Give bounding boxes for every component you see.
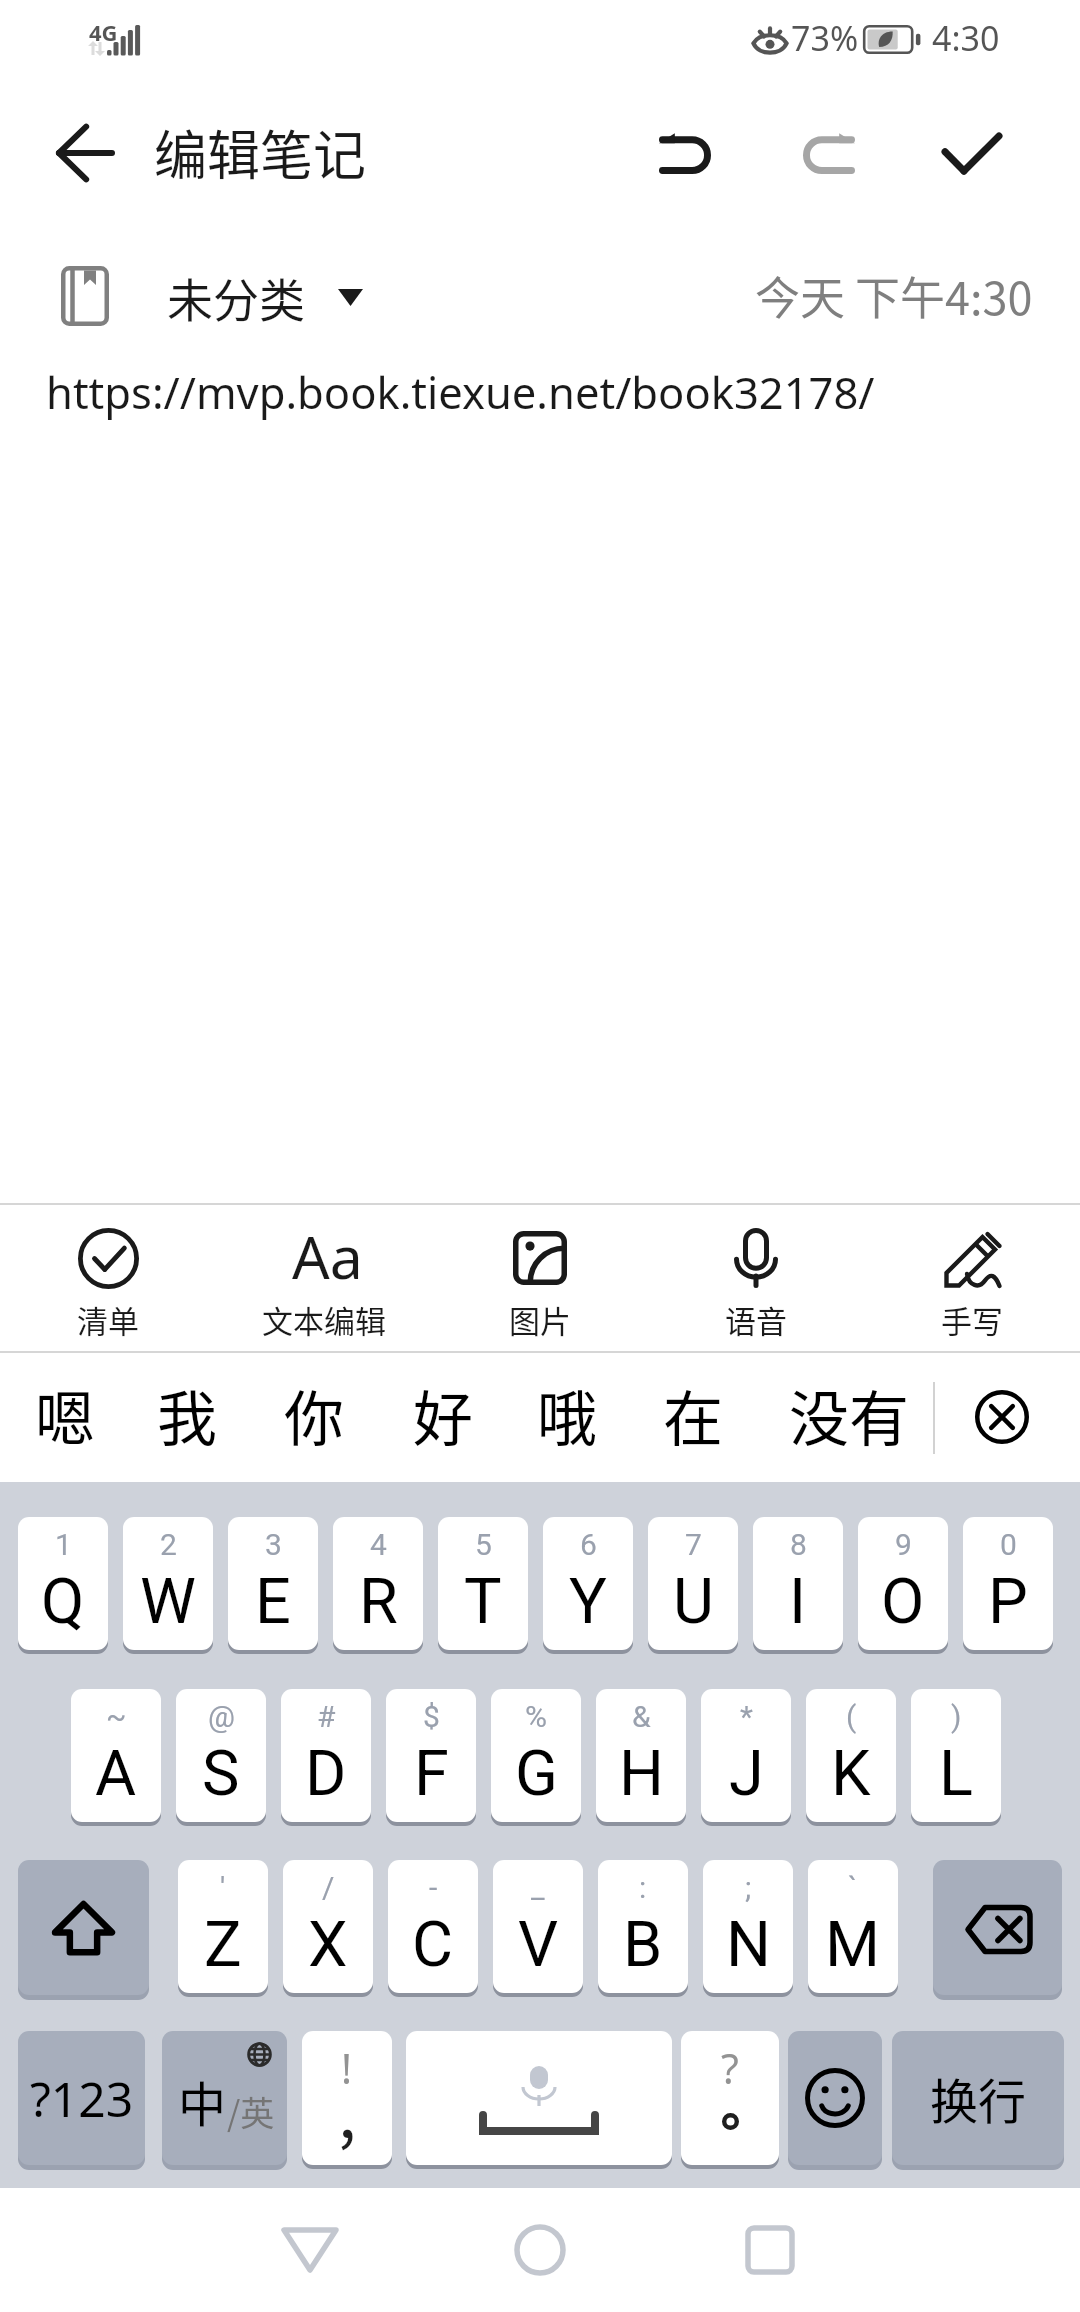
button[interactable]: ( — [806, 1689, 896, 1822]
button[interactable]: Back — [250, 2190, 370, 2310]
button[interactable]: 图片 — [432, 1205, 648, 1351]
staticText: , — [338, 2061, 357, 2157]
staticText: ; — [745, 1870, 752, 1905]
button[interactable] — [933, 1860, 1062, 1995]
button[interactable]: $ — [386, 1689, 476, 1822]
button[interactable]: ? — [681, 2031, 779, 2165]
staticText: 3 — [265, 1527, 282, 1562]
staticText: K — [831, 1737, 871, 1811]
button[interactable]: : — [598, 1860, 688, 1993]
staticText: R — [359, 1565, 398, 1639]
button[interactable]: 嗯 — [30, 1350, 100, 1479]
button[interactable]: 5 — [438, 1517, 528, 1650]
staticText: ~ — [106, 1699, 127, 1734]
button[interactable]: 3 — [228, 1517, 318, 1650]
button[interactable]: 6 — [543, 1517, 633, 1650]
staticText: ) — [951, 1699, 962, 1734]
button[interactable]: 你 — [279, 1350, 349, 1479]
button[interactable]: _ — [493, 1860, 583, 1993]
button[interactable]: 7 — [648, 1517, 738, 1650]
button[interactable]: 1 — [18, 1517, 108, 1650]
button[interactable]: ) — [911, 1689, 1001, 1822]
button[interactable] — [788, 2031, 882, 2165]
button[interactable]: Undo — [642, 110, 728, 196]
staticText: 6 — [580, 1527, 597, 1562]
button[interactable]: 4 — [333, 1517, 423, 1650]
button[interactable]: Home — [480, 2190, 600, 2310]
button[interactable]: & — [596, 1689, 686, 1822]
staticText: C — [412, 1908, 454, 1982]
staticText: N — [726, 1908, 771, 1982]
staticText: L — [939, 1737, 973, 1811]
staticText: 今天 下午4:30 — [755, 263, 1033, 328]
button[interactable]: 换行 — [892, 2031, 1064, 2165]
staticText: U — [673, 1565, 714, 1639]
staticText: X — [308, 1908, 348, 1982]
button[interactable]: 语音 — [648, 1205, 864, 1351]
staticText: $ — [423, 1699, 440, 1734]
button[interactable]: / — [283, 1860, 373, 1993]
staticText: Y — [569, 1565, 607, 1639]
button[interactable]: 0 — [963, 1517, 1053, 1650]
staticText: : — [639, 1870, 647, 1905]
staticText: Z — [204, 1908, 242, 1982]
staticText: ' — [220, 1870, 226, 1905]
button[interactable]: ~ — [71, 1689, 161, 1822]
staticText: ?123 — [30, 2066, 134, 2131]
staticText: / — [322, 1870, 335, 1905]
staticText: T — [464, 1565, 502, 1639]
staticText: B — [623, 1908, 663, 1982]
button[interactable]: 8 — [753, 1517, 843, 1650]
button[interactable]: ; — [703, 1860, 793, 1993]
button[interactable]: 未分类 — [40, 248, 383, 344]
button[interactable]: ' — [178, 1860, 268, 1993]
staticText: 我 — [157, 1371, 217, 1458]
staticText: 4:30 — [932, 15, 1000, 61]
staticText: 未分类 — [167, 264, 305, 331]
button[interactable]: ` — [808, 1860, 898, 1993]
button[interactable]: @ — [176, 1689, 266, 1822]
button[interactable] — [18, 1860, 149, 1995]
staticText: V — [518, 1908, 559, 1982]
staticText: H — [619, 1737, 664, 1811]
staticText: ` — [848, 1870, 858, 1905]
staticText: 2 — [160, 1527, 177, 1562]
button[interactable]: 好 — [408, 1350, 478, 1479]
button[interactable]: Aa — [216, 1205, 432, 1351]
staticText: I — [789, 1565, 807, 1639]
button[interactable]: Redo — [786, 110, 872, 196]
staticText: O — [881, 1565, 925, 1639]
button[interactable]: 2 — [123, 1517, 213, 1650]
button[interactable]: 我 — [152, 1350, 222, 1479]
button[interactable]: 哦 — [532, 1350, 602, 1479]
button[interactable]: * — [701, 1689, 791, 1822]
button[interactable]: Recents — [710, 2190, 830, 2310]
staticText: 文本编辑 — [262, 1297, 386, 1342]
staticText: ( — [846, 1699, 857, 1734]
button[interactable]: % — [491, 1689, 581, 1822]
staticText: ! — [341, 2040, 353, 2096]
button[interactable]: ! — [302, 2031, 392, 2165]
button[interactable]: ?123 — [18, 2031, 145, 2165]
button[interactable]: 中 — [162, 2031, 287, 2165]
button[interactable] — [406, 2031, 672, 2165]
button[interactable]: 清单 — [0, 1205, 216, 1351]
staticText: Aa — [292, 1216, 363, 1296]
button[interactable]: Back — [32, 112, 138, 194]
button[interactable]: # — [281, 1689, 371, 1822]
button[interactable]: 9 — [858, 1517, 948, 1650]
staticText: ? — [721, 2040, 739, 2096]
staticText: 中 — [178, 2066, 227, 2136]
button[interactable]: - — [388, 1860, 478, 1993]
staticText: # — [317, 1699, 336, 1734]
staticText: - — [429, 1870, 438, 1905]
staticText: A — [95, 1737, 137, 1811]
button[interactable]: Clear candidates — [949, 1363, 1054, 1470]
button[interactable]: Save — [929, 110, 1015, 196]
button[interactable]: 在 — [658, 1350, 728, 1479]
staticText: J — [729, 1737, 764, 1811]
button[interactable]: 没有 — [784, 1350, 914, 1479]
staticText: @ — [208, 1699, 235, 1734]
button[interactable]: 手写 — [864, 1205, 1080, 1351]
staticText: 8 — [790, 1527, 807, 1562]
